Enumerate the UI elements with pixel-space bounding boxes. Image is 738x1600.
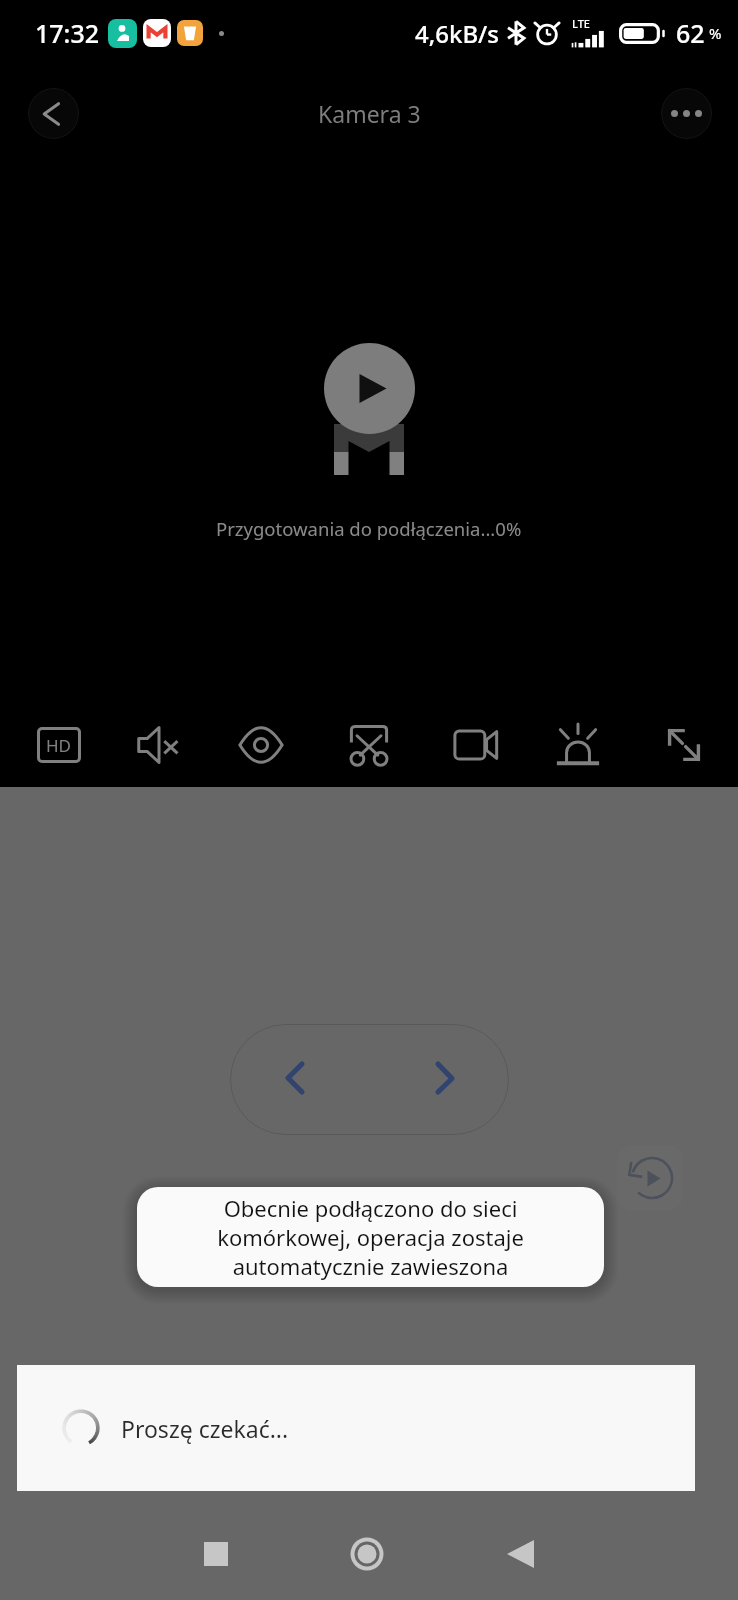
button[interactable]: Next	[428, 1053, 460, 1103]
staticText: Obecnie podłączono do sieci komórkowej, …	[217, 1193, 524, 1281]
button[interactable]: Home	[323, 1510, 411, 1598]
button[interactable]: Mute	[115, 705, 203, 785]
button[interactable]: Fullscreen	[640, 705, 728, 785]
button[interactable]: Privacy	[217, 705, 305, 785]
staticText: 4,6kB/s	[415, 17, 500, 50]
button[interactable]: Record	[432, 705, 520, 785]
staticText: 62	[676, 16, 705, 50]
button[interactable]: Recents	[172, 1510, 260, 1598]
button[interactable]: Back	[476, 1510, 564, 1598]
button[interactable]: More options	[661, 88, 712, 139]
staticText: Proszę czekać...	[121, 1413, 289, 1444]
staticText: 17:32	[35, 16, 100, 50]
staticText: %	[709, 23, 722, 43]
button[interactable]: Alarm light	[534, 705, 622, 785]
staticText: Kamera 3	[318, 98, 421, 129]
staticText: LTE	[572, 16, 590, 31]
button[interactable]: Replay	[617, 1145, 683, 1211]
staticText: Przygotowania do podłączenia...0%	[216, 516, 522, 541]
button[interactable]: Previous	[279, 1053, 311, 1103]
staticText: HD	[46, 734, 72, 757]
button[interactable]: Back	[28, 88, 79, 139]
button[interactable]: Clip	[325, 705, 413, 785]
button[interactable]: Previous	[230, 1024, 509, 1135]
button[interactable]: HD quality	[15, 705, 103, 785]
